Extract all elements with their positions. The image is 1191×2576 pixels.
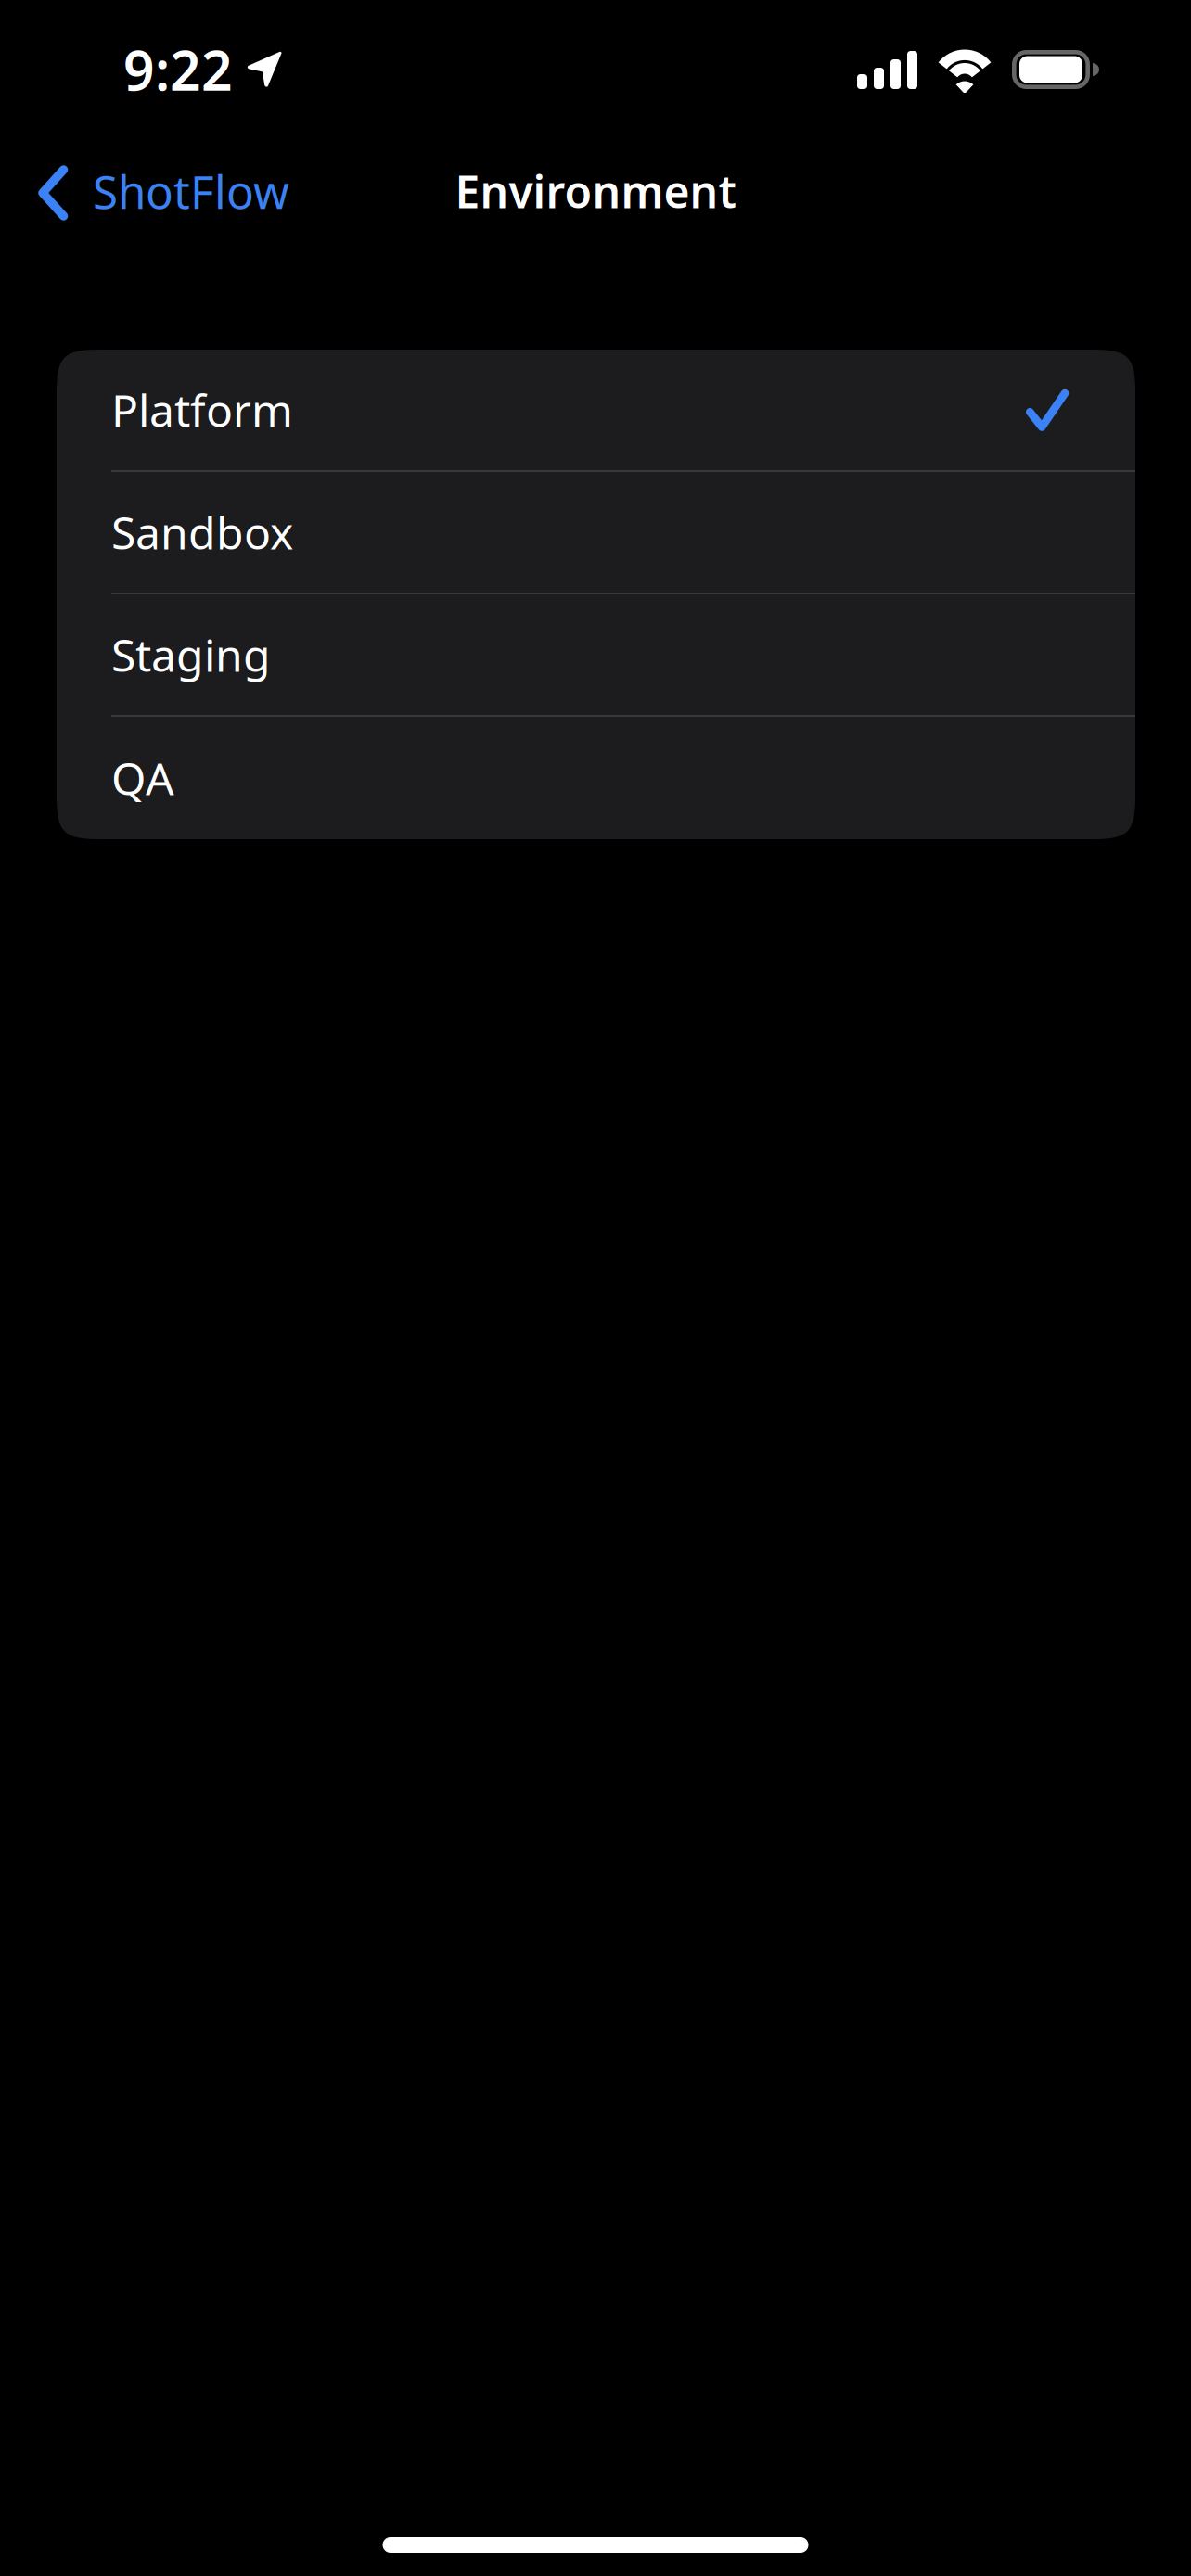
staticText: Environment <box>455 161 736 221</box>
staticText: 9:22 <box>123 33 233 106</box>
button[interactable]: QA <box>57 717 1135 839</box>
button[interactable]: Sandbox <box>57 472 1135 594</box>
staticText: QA <box>111 748 174 807</box>
staticText: Platform <box>111 380 293 439</box>
staticText: Staging <box>111 625 271 684</box>
button[interactable]: Back to ShotFlow <box>0 150 304 232</box>
button[interactable]: Staging <box>57 594 1135 717</box>
button[interactable]: Platform <box>57 350 1135 472</box>
staticText: Sandbox <box>111 503 293 562</box>
staticText: ShotFlow <box>93 161 289 221</box>
